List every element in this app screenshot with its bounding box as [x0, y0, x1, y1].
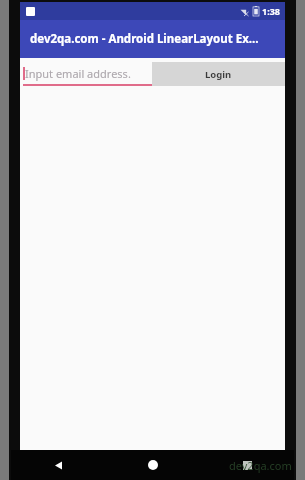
button[interactable]: Home	[106, 450, 200, 480]
staticText: Input email address.	[25, 66, 131, 81]
staticText: dev2qa.com	[229, 458, 292, 473]
button[interactable]: Login	[152, 62, 285, 86]
staticText: Login	[205, 68, 232, 81]
button[interactable]: Recent apps	[200, 450, 294, 480]
staticText: dev2qa.com - Android LinearLayout Ex…	[30, 31, 259, 47]
button[interactable]: Input email address.	[20, 58, 152, 89]
staticText: 1:38	[262, 5, 280, 17]
button[interactable]: Back	[11, 450, 106, 480]
